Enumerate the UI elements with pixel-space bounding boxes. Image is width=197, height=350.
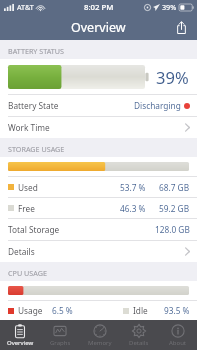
staticText: STORAGE USAGE — [8, 144, 65, 154]
staticText: Free — [18, 203, 35, 214]
staticText: 53.7 % — [120, 182, 146, 193]
staticText: Battery State — [8, 100, 59, 111]
staticText: Overview — [71, 19, 126, 36]
staticText: Discharging — [134, 100, 181, 111]
button[interactable]: Free — [0, 198, 197, 218]
button[interactable]: Overview — [0, 320, 40, 350]
staticText: 39% — [162, 2, 177, 12]
staticText: AT&T — [17, 2, 34, 12]
staticText: 39% — [156, 66, 189, 88]
button[interactable]: About — [158, 320, 197, 350]
staticText: About — [169, 339, 187, 347]
staticText: Overview — [7, 339, 34, 347]
staticText: 8:02 PM — [84, 2, 114, 13]
staticText: Usage — [18, 305, 43, 316]
button[interactable]: Memory — [80, 320, 119, 350]
staticText: Used — [18, 182, 38, 193]
button[interactable]: Battery State — [0, 95, 197, 116]
staticText: 59.2 GB — [159, 203, 190, 214]
staticText: 93.5 % — [164, 305, 190, 316]
button[interactable]: Details — [119, 320, 158, 350]
button[interactable]: Work Time — [0, 117, 197, 138]
staticText: Work Time — [8, 122, 50, 133]
button[interactable]: Usage — [0, 301, 197, 320]
staticText: Memory — [88, 339, 112, 347]
staticText: 46.3 % — [120, 203, 146, 214]
staticText: 6.5 % — [52, 305, 73, 316]
staticText: 128.0 GB — [155, 224, 190, 235]
button[interactable]: Used — [0, 177, 197, 197]
staticText: Details — [8, 246, 35, 257]
button[interactable]: Total Storage — [0, 219, 197, 240]
button[interactable]: Graphs — [40, 320, 80, 350]
button[interactable]: Details — [0, 241, 197, 262]
staticText: BATTERY STATUS — [8, 46, 65, 56]
staticText: 68.7 GB — [159, 182, 190, 193]
staticText: Graphs — [50, 339, 71, 347]
staticText: Total Storage — [8, 224, 60, 235]
staticText: Idle — [133, 305, 148, 316]
button[interactable]: Share — [171, 17, 191, 37]
staticText: Details — [129, 339, 149, 347]
staticText: CPU USAGE — [8, 268, 47, 278]
